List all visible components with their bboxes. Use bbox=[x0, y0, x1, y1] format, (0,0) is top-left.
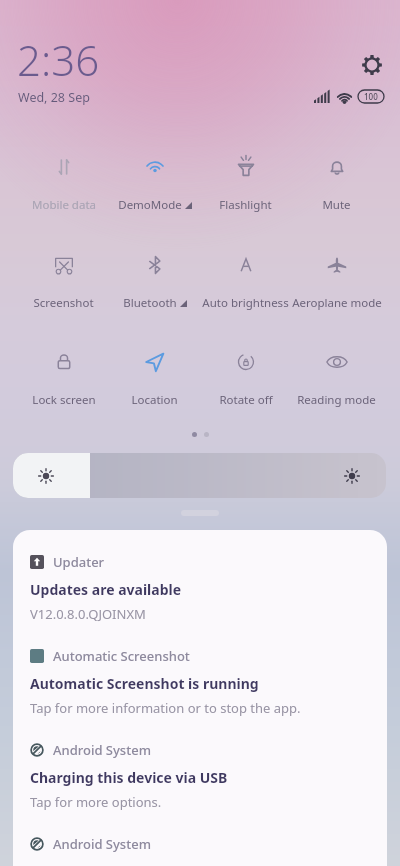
button[interactable]: Bluetooth bbox=[109, 248, 200, 311]
staticText: Reading mode bbox=[297, 392, 376, 408]
staticText: DemoMode bbox=[118, 197, 182, 213]
button[interactable]: DemoMode bbox=[109, 150, 200, 213]
staticText: Aeroplane mode bbox=[292, 295, 382, 311]
staticText: Android System bbox=[53, 741, 151, 759]
button[interactable]: Mute bbox=[291, 150, 382, 213]
button[interactable]: Rotate off bbox=[200, 345, 291, 408]
staticText: Mobile data bbox=[32, 197, 96, 213]
staticText: Automatic Screenshot bbox=[53, 647, 190, 665]
staticText: Android System bbox=[53, 835, 151, 853]
button[interactable]: Mobile data bbox=[18, 150, 109, 213]
staticText: Tap for more information or to stop the … bbox=[30, 699, 301, 717]
button[interactable]: Auto brightness bbox=[200, 248, 291, 311]
button[interactable]: Updater bbox=[13, 530, 387, 647]
staticText: Updates are available bbox=[30, 580, 182, 599]
staticText: Bluetooth bbox=[123, 295, 177, 311]
staticText: Rotate off bbox=[219, 392, 273, 408]
button[interactable]: Reading mode bbox=[291, 345, 382, 408]
button[interactable]: Brightness bbox=[13, 453, 386, 498]
staticText: Location bbox=[131, 392, 178, 408]
staticText: Tap for more options. bbox=[30, 793, 162, 811]
button[interactable]: Android System bbox=[13, 741, 387, 835]
staticText: Mute bbox=[322, 197, 351, 213]
staticText: 100 bbox=[364, 91, 378, 102]
button[interactable]: Lock screen bbox=[18, 345, 109, 408]
staticText: Flashlight bbox=[219, 197, 272, 213]
button[interactable]: Flashlight bbox=[200, 150, 291, 213]
staticText: Automatic Screenshot is running bbox=[30, 674, 259, 693]
button[interactable]: Location bbox=[109, 345, 200, 408]
staticText: Auto brightness bbox=[202, 295, 289, 311]
button[interactable]: Aeroplane mode bbox=[291, 248, 382, 311]
staticText: Screenshot bbox=[33, 295, 94, 311]
button[interactable]: Android System bbox=[13, 835, 387, 866]
staticText: Lock screen bbox=[32, 392, 96, 408]
button[interactable]: Settings bbox=[354, 47, 390, 83]
staticText: 2:36 bbox=[17, 31, 100, 88]
staticText: Charging this device via USB bbox=[30, 768, 228, 787]
staticText: V12.0.8.0.QJOINXM bbox=[30, 605, 146, 623]
button[interactable]: Automatic Screenshot bbox=[13, 647, 387, 741]
staticText: Updater bbox=[53, 553, 105, 571]
staticText: Wed, 28 Sep bbox=[18, 89, 90, 106]
button[interactable]: Screenshot bbox=[18, 248, 109, 311]
